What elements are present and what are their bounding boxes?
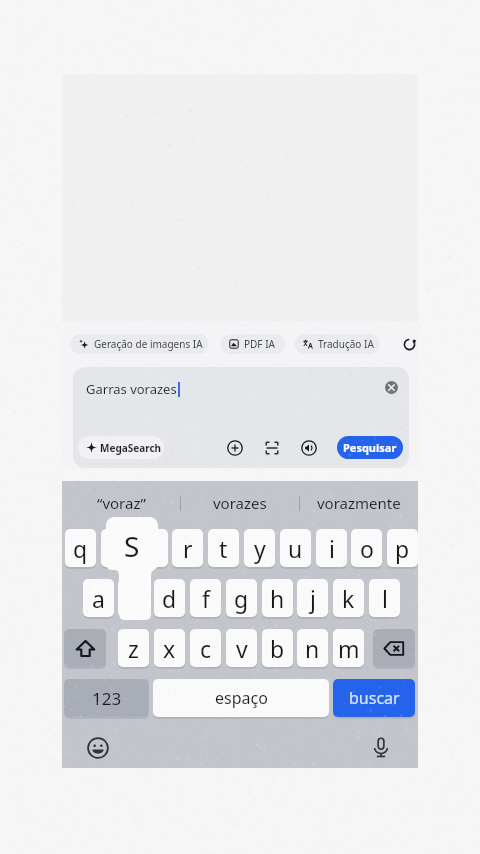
staticText: MegaSearch (100, 441, 162, 455)
button[interactable]: vorazes (181, 481, 299, 525)
button[interactable]: g (226, 579, 257, 617)
staticText: u (288, 533, 303, 564)
staticText: Pesquisar (343, 440, 397, 455)
staticText: n (305, 633, 320, 664)
staticText: w (107, 533, 126, 564)
staticText: r (183, 533, 193, 564)
button[interactable]: “voraz” (62, 481, 180, 525)
button[interactable]: espaço (153, 679, 329, 717)
staticText: h (270, 583, 285, 614)
staticText: espaço (215, 687, 268, 709)
staticText: Garras vorazes (86, 380, 177, 398)
button[interactable]: Backspace (373, 629, 415, 667)
staticText: d (162, 583, 177, 614)
button[interactable]: vorazmente (300, 481, 418, 525)
button[interactable]: y (244, 529, 275, 567)
button[interactable]: Add (227, 440, 243, 456)
button[interactable]: r (172, 529, 203, 567)
button[interactable]: u (280, 529, 311, 567)
button[interactable]: k (333, 579, 364, 617)
staticText: t (219, 533, 228, 564)
button[interactable]: x (154, 629, 185, 667)
button[interactable]: v (226, 629, 257, 667)
staticText: a (92, 583, 105, 614)
staticText: 123 (92, 687, 122, 710)
button[interactable]: Voice search (301, 440, 317, 456)
button[interactable]: a (83, 579, 114, 617)
staticText: PDF IA (244, 337, 275, 351)
staticText: “voraz” (97, 493, 146, 513)
staticText: l (382, 583, 388, 614)
button[interactable]: 123 (64, 679, 149, 717)
staticText: Geração de imagens IA (94, 337, 203, 351)
button[interactable]: Refresh (402, 337, 417, 352)
button[interactable]: s (118, 579, 149, 617)
button[interactable]: Scan (264, 440, 280, 456)
staticText: v (236, 633, 248, 664)
staticText: vorazmente (317, 493, 401, 513)
staticText: i (329, 533, 335, 564)
button[interactable]: l (369, 579, 400, 617)
button[interactable]: buscar (333, 679, 415, 717)
staticText: buscar (349, 687, 400, 709)
staticText: q (73, 533, 88, 564)
staticText: m (338, 633, 360, 664)
staticText: Tradução IA (318, 337, 374, 351)
staticText: z (128, 633, 139, 664)
button[interactable]: m (333, 629, 364, 667)
button[interactable]: MegaSearch (78, 436, 164, 459)
button[interactable] (73, 367, 409, 468)
staticText: vorazes (213, 493, 267, 513)
staticText: c (200, 633, 212, 664)
button[interactable]: i (316, 529, 347, 567)
staticText: b (270, 633, 285, 664)
staticText: f (202, 583, 210, 614)
button[interactable]: w (101, 529, 132, 567)
staticText: S (124, 527, 140, 565)
button[interactable]: p (387, 529, 418, 567)
staticText: y (254, 533, 266, 564)
button[interactable]: Clear text (385, 381, 398, 394)
button[interactable]: o (351, 529, 382, 567)
staticText: j (310, 583, 316, 614)
button[interactable]: j (297, 579, 328, 617)
button[interactable]: e (137, 529, 168, 567)
button[interactable]: b (262, 629, 293, 667)
button[interactable]: z (118, 629, 149, 667)
button[interactable]: Shift (64, 629, 106, 667)
button[interactable]: Emoji keyboard (87, 737, 109, 759)
button[interactable]: d (154, 579, 185, 617)
button[interactable]: q (65, 529, 96, 567)
staticText: k (342, 583, 355, 614)
staticText: g (234, 583, 249, 614)
button[interactable]: Tradução IA (294, 334, 380, 354)
staticText: o (360, 533, 374, 564)
button[interactable]: Voice input (370, 736, 392, 758)
staticText: x (163, 633, 176, 664)
button[interactable]: f (190, 579, 221, 617)
staticText: p (395, 533, 410, 564)
button[interactable]: Pesquisar (337, 436, 403, 459)
button[interactable]: n (297, 629, 328, 667)
button[interactable]: h (262, 579, 293, 617)
button[interactable]: Geração de imagens IA (70, 334, 209, 354)
button[interactable]: c (190, 629, 221, 667)
button[interactable]: t (208, 529, 239, 567)
button[interactable]: PDF IA (220, 334, 285, 354)
